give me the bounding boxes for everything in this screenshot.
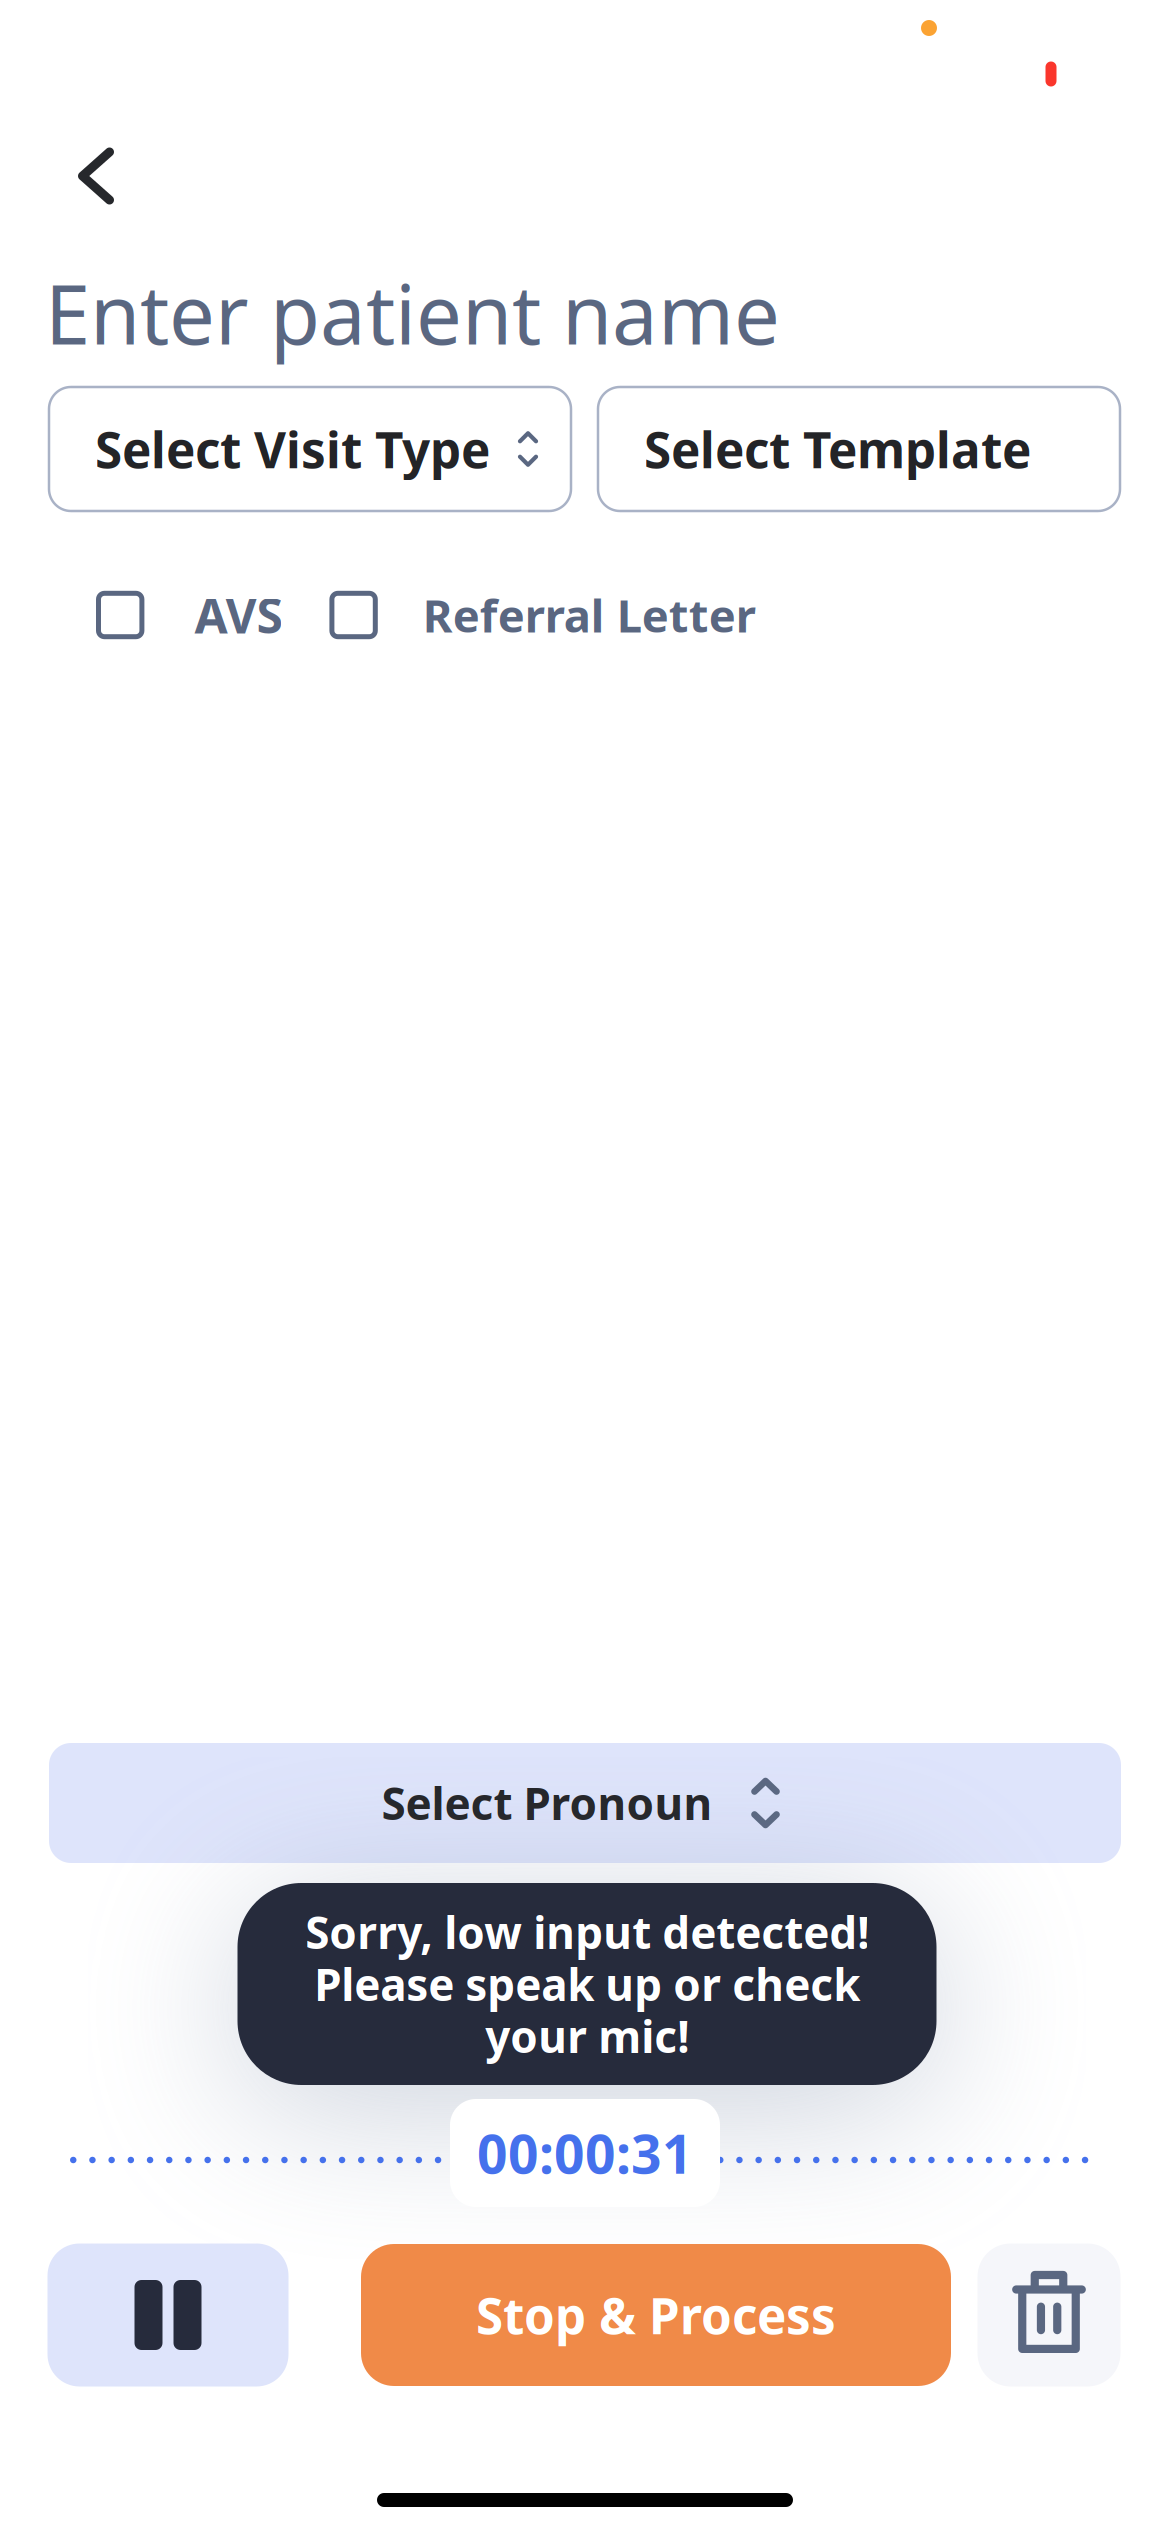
button[interactable]: Referral Letter — [329, 585, 756, 645]
staticText: AVS — [194, 583, 282, 647]
staticText: Stop & Process — [476, 2282, 836, 2348]
button[interactable]: Stop & Process — [361, 2244, 951, 2386]
staticText: Please speak up or check — [314, 1955, 860, 2013]
button[interactable]: Delete recording — [977, 2243, 1120, 2386]
staticText: Enter patient name — [45, 259, 780, 367]
staticText: your mic! — [485, 2007, 689, 2065]
staticText: Sorry, low input detected! — [305, 1903, 869, 1961]
staticText: Referral Letter — [423, 585, 756, 645]
button[interactable]: Select Visit Type — [49, 387, 571, 511]
staticText: 00:00:31 — [477, 2118, 693, 2188]
staticText: Select Visit Type — [95, 416, 490, 482]
staticText: Select Template — [644, 416, 1031, 482]
button[interactable]: Back — [41, 121, 151, 231]
button[interactable]: Select Pronoun — [49, 1743, 1121, 1863]
button[interactable]: Select Template — [598, 387, 1120, 511]
button[interactable]: Pause — [47, 2243, 288, 2386]
staticText: Select Pronoun — [381, 1774, 712, 1832]
button[interactable]: AVS — [96, 583, 282, 647]
